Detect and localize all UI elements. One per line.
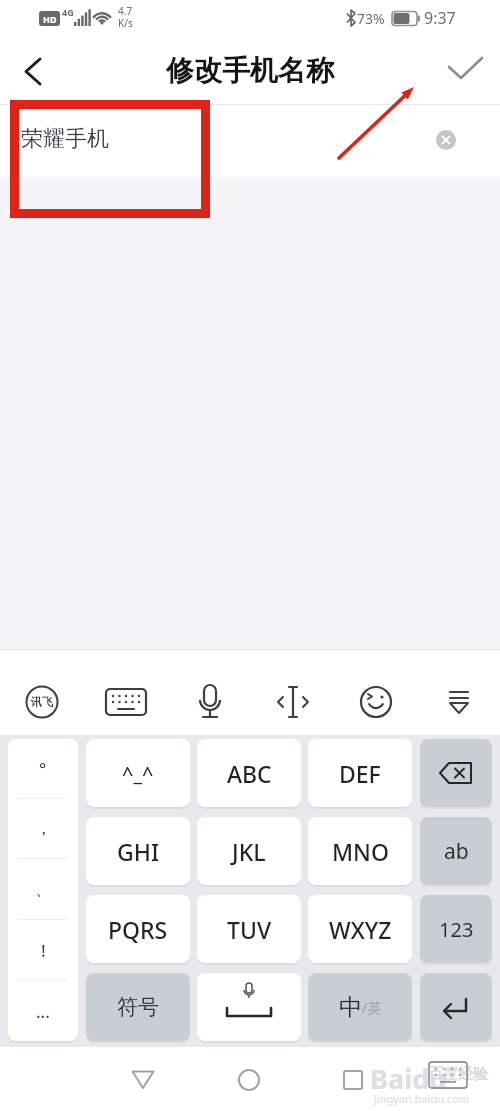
button[interactable] [197, 973, 301, 1041]
button[interactable] [420, 973, 492, 1041]
button[interactable]: 符号 [86, 973, 190, 1041]
button[interactable]: DEF [308, 739, 412, 807]
button[interactable] [417, 659, 500, 744]
button[interactable] [120, 1057, 166, 1103]
staticText: 4.7 [118, 4, 133, 18]
staticText: K/s [118, 16, 133, 30]
button[interactable]: ABC [197, 739, 301, 807]
button[interactable] [226, 1057, 272, 1103]
staticText: PQRS [108, 914, 168, 945]
staticText: 讯飞 [31, 695, 53, 709]
button[interactable] [251, 659, 334, 744]
staticText: 4G [62, 6, 74, 18]
button[interactable]: 讯飞 [0, 659, 84, 744]
staticText: WXYZ [329, 914, 392, 945]
staticText: Baidu [370, 1060, 447, 1097]
staticText: 、 [35, 879, 52, 900]
staticText: TUV [227, 914, 272, 945]
button[interactable]: 荣耀手机 [0, 105, 500, 177]
button[interactable]: ab [420, 817, 492, 885]
staticText: ， [35, 818, 52, 839]
staticText: 荣耀手机 [21, 125, 109, 153]
staticText: JKL [232, 836, 266, 867]
staticText: /英 [362, 998, 382, 1017]
staticText: ^_^ [122, 760, 154, 787]
button[interactable]: ... [8, 981, 78, 1041]
staticText: ABC [227, 758, 272, 789]
staticText: DEF [339, 758, 381, 789]
staticText: HD [43, 13, 57, 25]
button[interactable]: TUV [197, 895, 301, 963]
button[interactable]: WXYZ [308, 895, 412, 963]
button[interactable] [436, 130, 456, 150]
button[interactable] [420, 739, 492, 807]
staticText: ! [41, 939, 46, 962]
staticText: 123 [439, 916, 474, 943]
staticText: 73% [357, 9, 385, 28]
staticText: ab [444, 837, 469, 866]
button[interactable]: 、 [8, 859, 78, 919]
staticText: 百度经验 [428, 1065, 488, 1084]
button[interactable]: 123 [420, 895, 492, 963]
button[interactable] [10, 48, 56, 94]
staticText: ° [39, 757, 47, 780]
button[interactable]: JKL [197, 817, 301, 885]
button[interactable] [330, 1057, 376, 1103]
button[interactable] [84, 659, 168, 744]
button[interactable]: ° [8, 739, 78, 798]
staticText: GHI [117, 836, 160, 867]
button[interactable]: 中 [308, 973, 412, 1041]
button[interactable]: MNO [308, 817, 412, 885]
staticText: MNO [332, 836, 389, 867]
staticText: 修改手机名称 [166, 53, 334, 88]
button[interactable] [168, 659, 251, 744]
staticText: 中 [339, 993, 362, 1022]
button[interactable]: ^_^ [86, 739, 190, 807]
button[interactable]: GHI [86, 817, 190, 885]
staticText: 9:37 [424, 7, 456, 29]
staticText: ... [36, 1000, 50, 1023]
button[interactable]: PQRS [86, 895, 190, 963]
staticText: 符号 [117, 994, 159, 1020]
staticText: jingyan.baidu.com [374, 1091, 470, 1106]
button[interactable]: ， [8, 799, 78, 858]
button[interactable] [334, 659, 417, 744]
button[interactable] [440, 48, 492, 94]
button[interactable]: ! [8, 920, 78, 980]
